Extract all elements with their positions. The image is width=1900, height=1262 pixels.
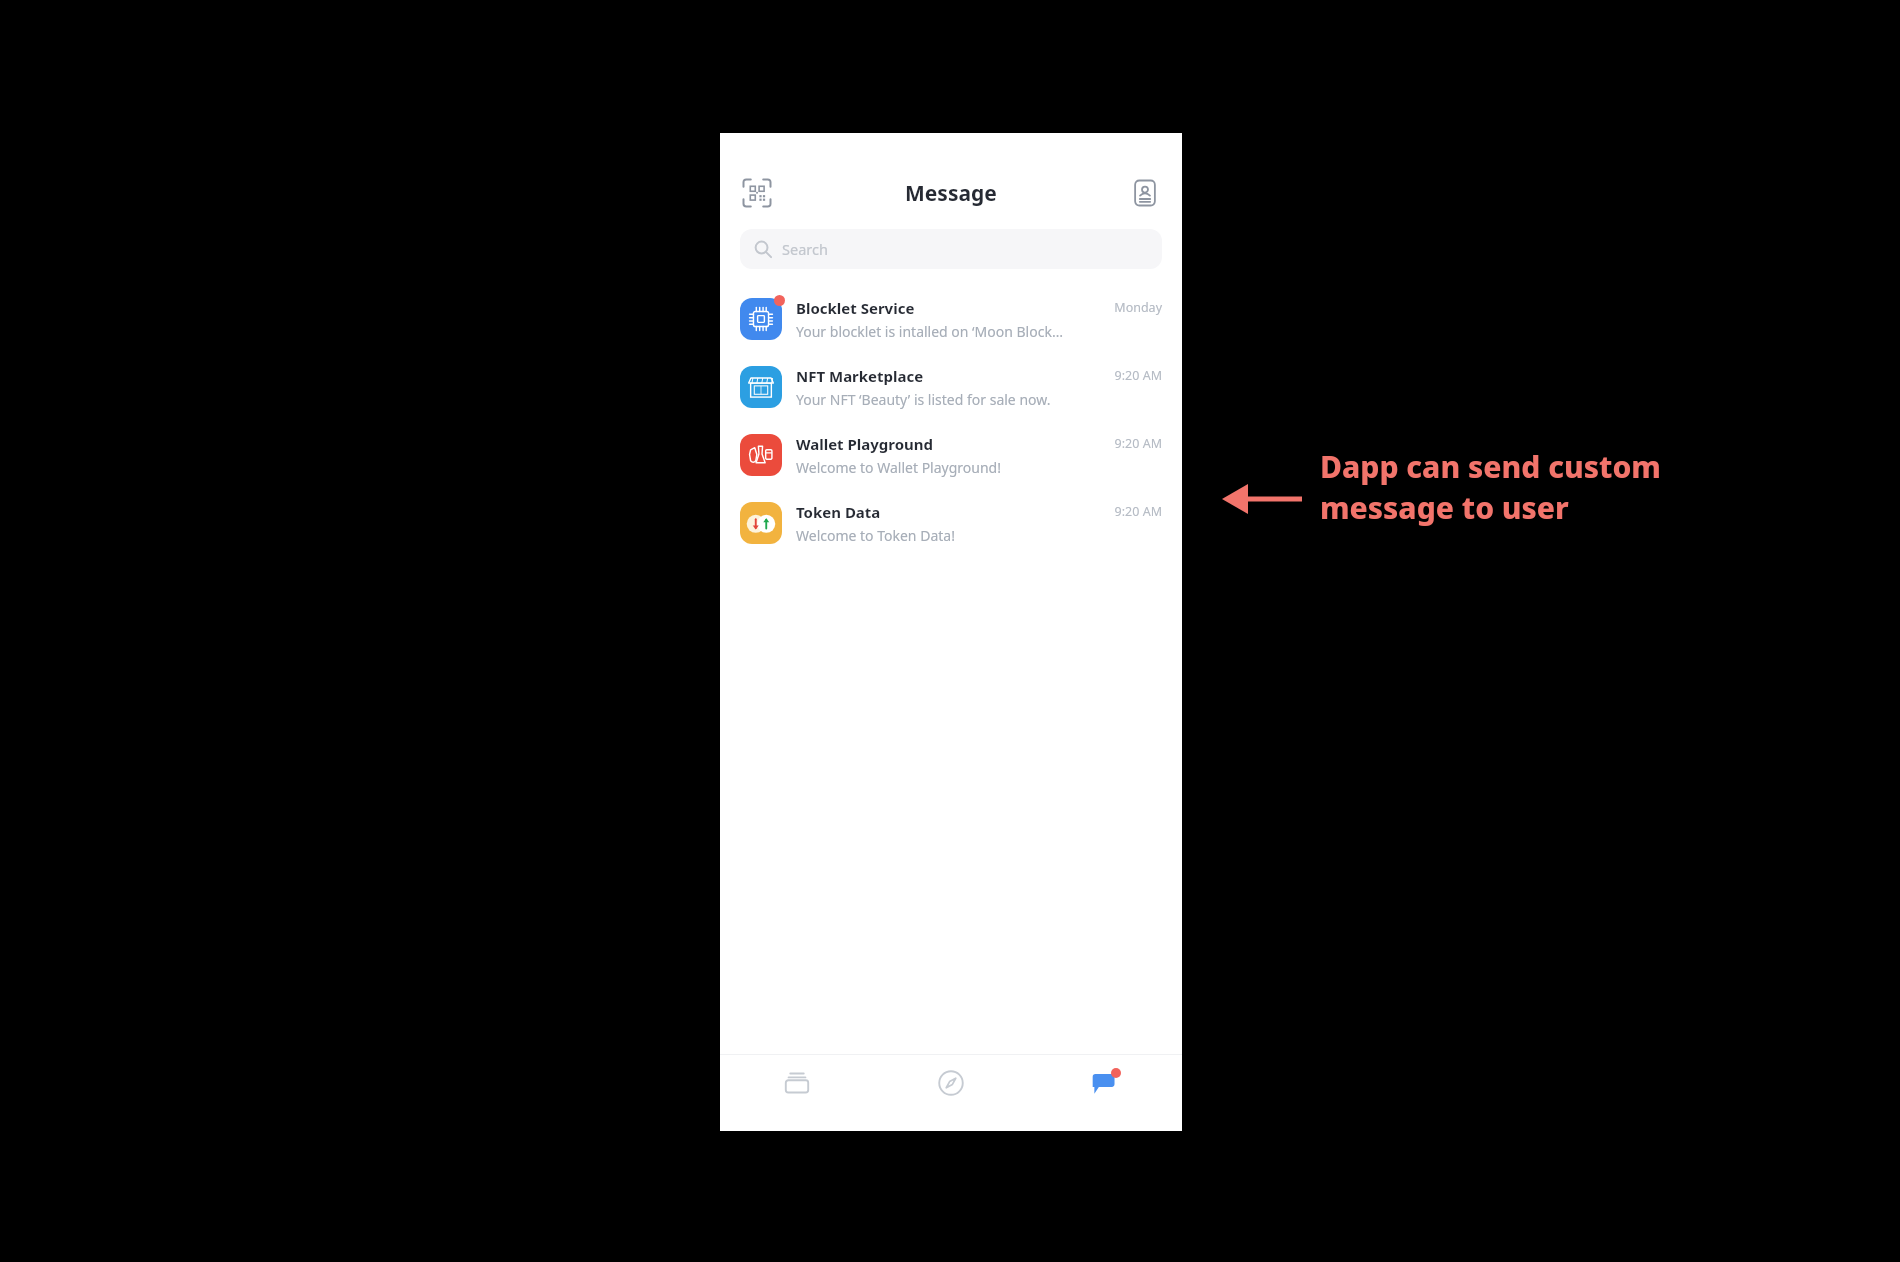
staticText: Search	[782, 239, 828, 259]
button[interactable]: Search	[740, 229, 1162, 269]
staticText: Blocklet Service	[796, 298, 915, 318]
staticText: Dapp can send custom	[1320, 446, 1661, 487]
staticText: 9:20 AM	[1114, 435, 1162, 452]
staticText: 9:20 AM	[1114, 367, 1162, 384]
staticText: Token Data	[796, 502, 881, 522]
button[interactable]: Scan QR code	[740, 176, 774, 210]
staticText: Monday	[1114, 299, 1162, 316]
staticText: Wallet Playground	[796, 434, 934, 454]
button[interactable]: NFT Marketplace	[720, 353, 1182, 421]
staticText: Your NFT ‘Beauty’ is listed for sale now…	[796, 390, 1051, 409]
staticText: message to user	[1320, 487, 1569, 528]
button[interactable]: Contacts	[1128, 176, 1162, 210]
button[interactable]: Messages	[1028, 1055, 1182, 1131]
staticText: Message	[905, 179, 997, 208]
staticText: Welcome to Wallet Playground!	[796, 458, 1001, 477]
button[interactable]: Blocklet Service	[720, 285, 1182, 353]
staticText: 9:20 AM	[1114, 503, 1162, 520]
button[interactable]: Wallet Playground	[720, 421, 1182, 489]
staticText: Your blocklet is intalled on ‘Moon Block…	[796, 322, 1063, 341]
button[interactable]: Wallet	[720, 1055, 874, 1131]
button[interactable]: Discover	[874, 1055, 1028, 1131]
button[interactable]: Token Data	[720, 489, 1182, 557]
staticText: Welcome to Token Data!	[796, 526, 955, 545]
staticText: NFT Marketplace	[796, 366, 924, 386]
